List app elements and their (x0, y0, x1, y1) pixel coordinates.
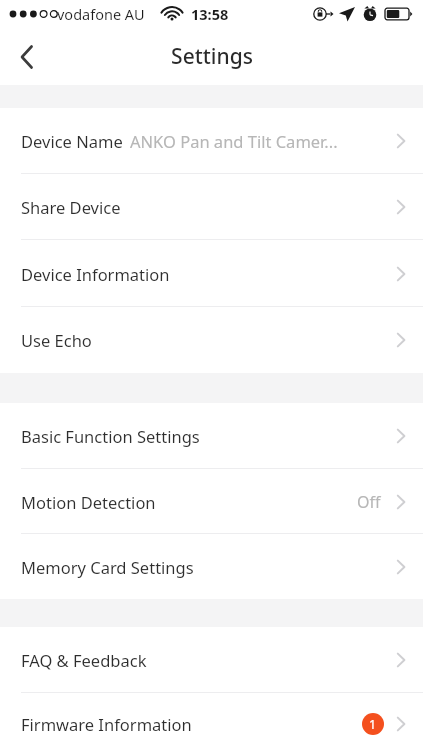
staticText: Device Information (21, 263, 170, 285)
staticText: Off (357, 491, 381, 513)
staticText: 13:58 (191, 4, 229, 24)
button[interactable]: Back (0, 31, 52, 83)
button[interactable]: FAQ & Feedback (0, 627, 423, 693)
staticText: Firmware Information (21, 713, 192, 735)
staticText: Motion Detection (21, 491, 156, 513)
staticText: Device Name (21, 130, 123, 152)
staticText: vodafone AU (57, 4, 145, 24)
button[interactable]: Motion Detection (0, 469, 423, 534)
staticText: Settings (171, 42, 253, 71)
button[interactable]: Share Device (0, 174, 423, 240)
button[interactable]: Firmware Information (0, 693, 423, 754)
staticText: 1 (369, 716, 377, 733)
staticText: Use Echo (21, 329, 92, 351)
staticText: Memory Card Settings (21, 556, 194, 578)
button[interactable]: Device Information (0, 240, 423, 307)
staticText: ANKO Pan and Tilt Camer... (130, 130, 390, 152)
staticText: Basic Function Settings (21, 425, 200, 447)
staticText: FAQ & Feedback (21, 649, 147, 671)
button[interactable]: Memory Card Settings (0, 534, 423, 599)
staticText: Share Device (21, 196, 121, 218)
button[interactable]: Basic Function Settings (0, 403, 423, 469)
button[interactable]: Use Echo (0, 307, 423, 373)
button[interactable]: Device Name (0, 108, 423, 174)
